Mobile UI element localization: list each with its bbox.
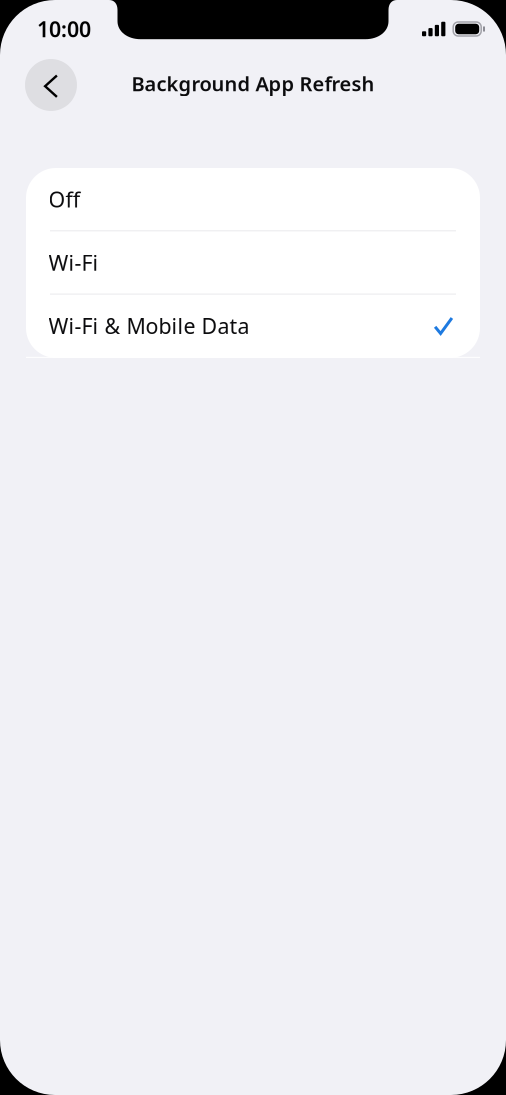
button[interactable]: Back xyxy=(25,59,77,111)
button[interactable]: Off xyxy=(26,168,480,231)
staticText: 10:00 xyxy=(37,15,91,43)
staticText: Off xyxy=(48,185,80,213)
button[interactable]: Wi-Fi & Mobile Data xyxy=(26,295,480,358)
staticText: Wi-Fi xyxy=(48,248,98,277)
button[interactable]: Wi-Fi xyxy=(26,231,480,295)
staticText: Wi-Fi & Mobile Data xyxy=(48,312,249,340)
staticText: Background App Refresh xyxy=(131,70,374,97)
